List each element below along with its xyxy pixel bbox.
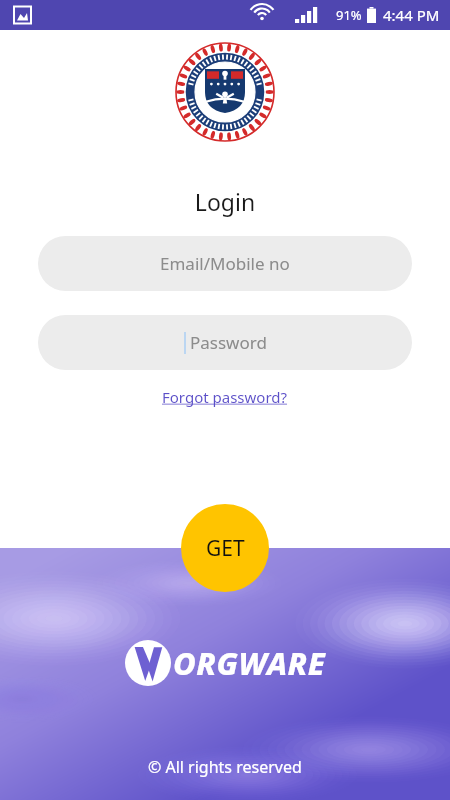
button[interactable]: Forgot password? [156,384,294,410]
staticText: GET [206,534,245,563]
staticText: Password [190,331,267,354]
staticText: 4:44 PM [383,5,440,25]
other: Worgware logo [125,640,326,686]
other: Don Bosco College crest [175,42,275,142]
staticText: Email/Mobile no [160,252,290,275]
staticText: ORGWARE [173,642,326,684]
button[interactable]: Email/Mobile no [38,236,412,291]
button[interactable]: GET [181,504,269,592]
staticText: Login [0,186,450,217]
staticText: © All rights reserved [148,756,302,778]
button[interactable]: Password [38,315,412,370]
staticText: 91% [336,6,362,24]
staticText: Forgot password? [162,387,288,407]
